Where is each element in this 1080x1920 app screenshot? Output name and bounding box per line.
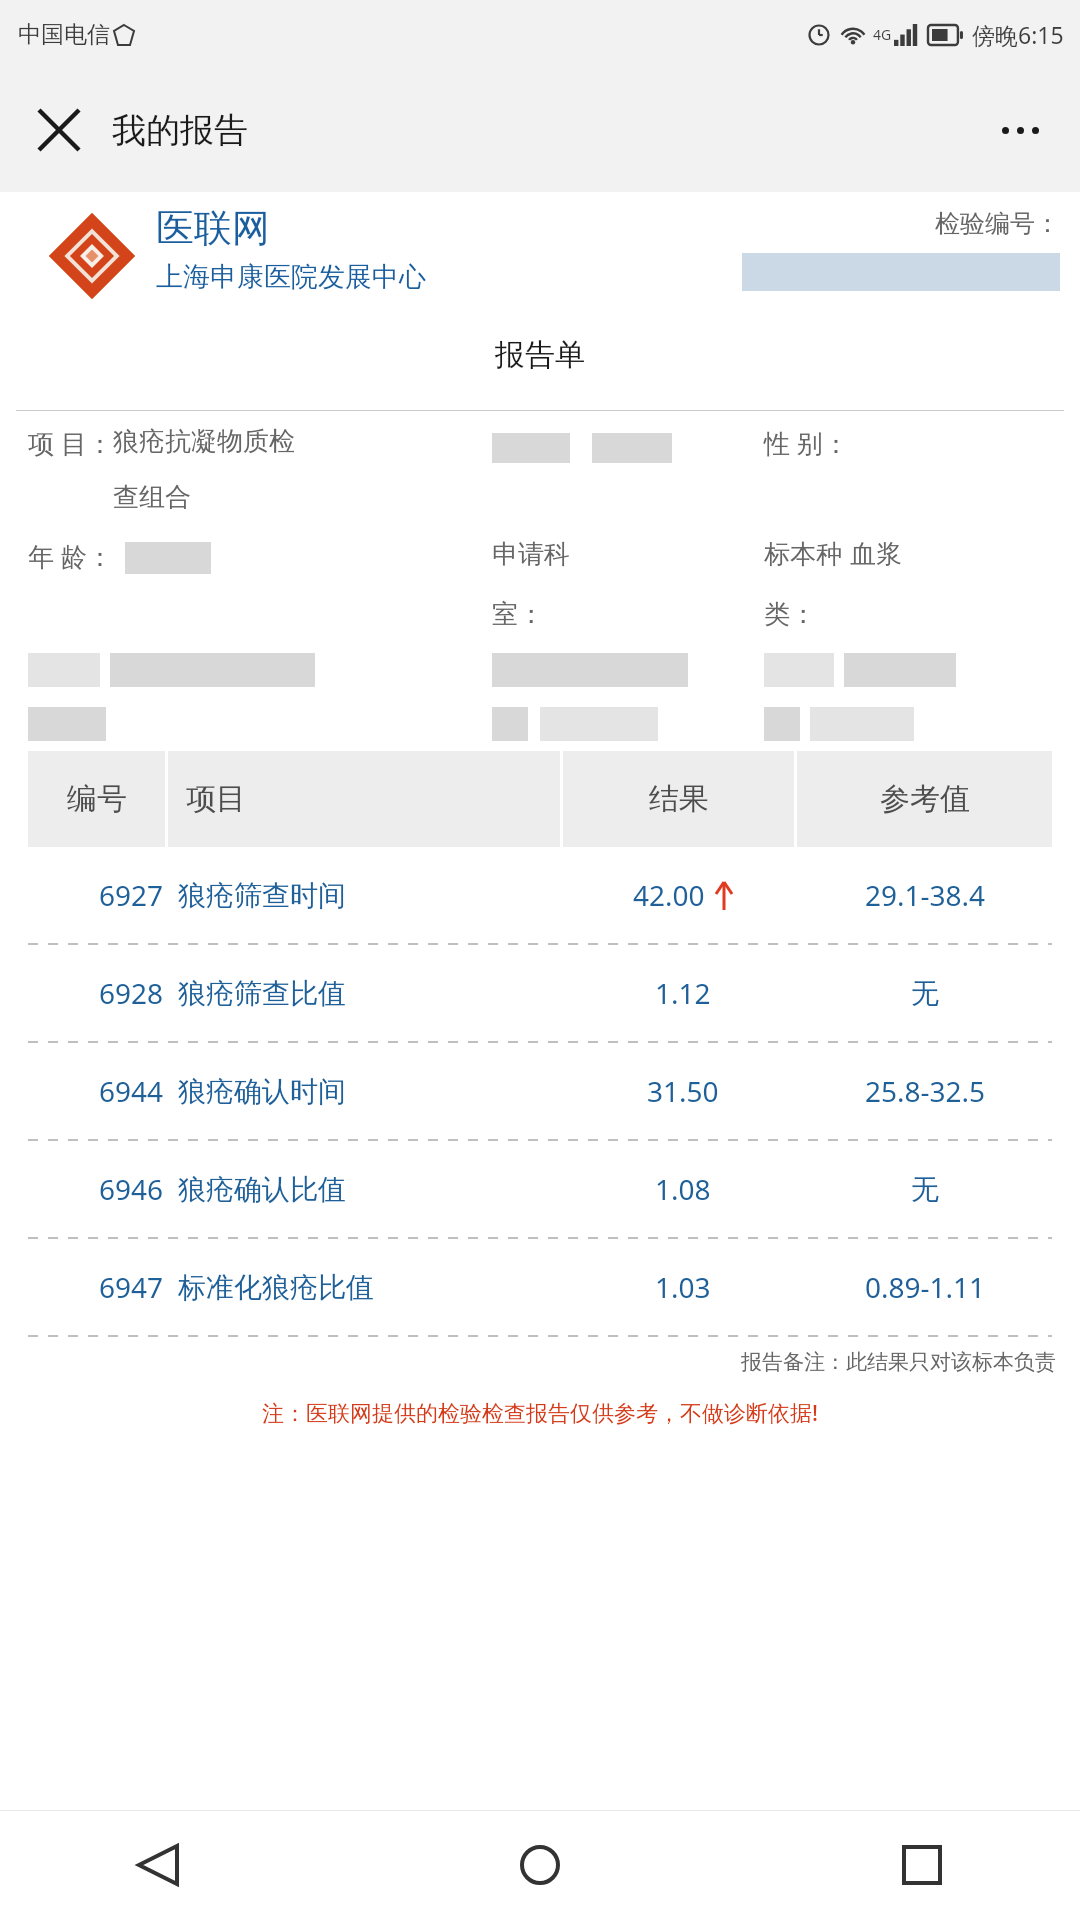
staticText: 医联网 (156, 204, 270, 252)
button[interactable]: More options (988, 98, 1052, 162)
staticText: 狼疮抗凝物质检 查组合 (113, 425, 295, 514)
staticText: 傍晚6:15 (972, 19, 1064, 50)
button[interactable]: Recent apps (874, 1817, 970, 1913)
staticText: 6944 (99, 1072, 164, 1110)
staticText: 无 (911, 976, 939, 1011)
staticText: 狼疮筛查时间 (178, 878, 346, 913)
staticText: 标准化狼疮比值 (178, 1270, 374, 1305)
staticText: 无 (911, 1172, 939, 1207)
button[interactable]: 6947 (28, 1239, 1052, 1335)
staticText: 编号 (67, 780, 127, 818)
button[interactable]: 6928 (28, 945, 1052, 1041)
staticText: 参考值 (880, 780, 970, 818)
staticText: 狼疮确认比值 (178, 1172, 346, 1207)
staticText: 项 目： (28, 425, 113, 461)
button[interactable]: 6946 (28, 1141, 1052, 1237)
staticText: 标本种 类： (764, 538, 842, 631)
staticText: 项目 (186, 780, 246, 818)
staticText: 42.00 (633, 876, 705, 914)
staticText: 狼疮确认时间 (178, 1074, 346, 1109)
staticText: 年 龄： (28, 538, 113, 574)
staticText: 注：医联网提供的检验检查报告仅供参考，不做诊断依据! (0, 1397, 1080, 1427)
staticText: 31.50 (647, 1072, 719, 1110)
staticText: 6947 (99, 1268, 164, 1306)
staticText: 4G (873, 25, 892, 44)
staticText: 报告备注：此结果只对该标本负责 (0, 1349, 1056, 1375)
staticText: 1.08 (655, 1170, 711, 1208)
staticText: 中国电信 (18, 20, 110, 49)
staticText: 申请科 室： (492, 538, 570, 631)
button[interactable]: 6927 (28, 847, 1052, 943)
staticText: 1.03 (655, 1268, 711, 1306)
staticText: 29.1-38.4 (865, 876, 986, 914)
staticText: 0.89-1.11 (865, 1268, 986, 1306)
staticText: 性 别： (764, 425, 849, 461)
button[interactable]: 6944 (28, 1043, 1052, 1139)
staticText: 1.12 (655, 974, 711, 1012)
staticText: 我的报告 (112, 109, 248, 152)
staticText: 6927 (99, 876, 164, 914)
button[interactable]: Home (492, 1817, 588, 1913)
staticText: 狼疮筛查比值 (178, 976, 346, 1011)
staticText: 6946 (99, 1170, 164, 1208)
staticText: 6928 (99, 974, 164, 1012)
button[interactable]: Close (30, 101, 88, 159)
staticText: 25.8-32.5 (865, 1072, 986, 1110)
staticText: 血浆 (850, 538, 902, 571)
button[interactable]: Back (110, 1817, 206, 1913)
staticText: 报告单 (0, 336, 1080, 374)
staticText: 检验编号： (935, 208, 1060, 239)
staticText: 上海申康医院发展中心 (156, 260, 426, 294)
staticText: 结果 (649, 780, 709, 818)
